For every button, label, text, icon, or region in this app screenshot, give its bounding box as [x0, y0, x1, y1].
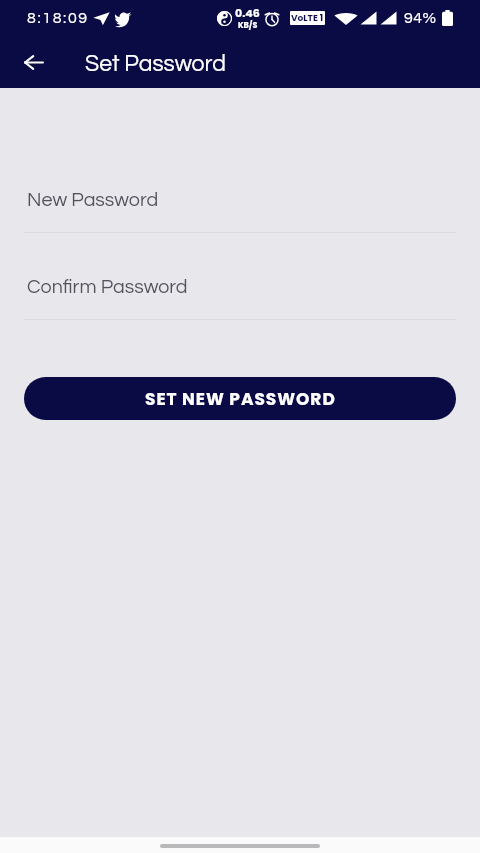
- staticText: 8:18:09: [27, 10, 89, 26]
- button[interactable]: Confirm Password: [24, 277, 456, 320]
- staticText: Set Password: [85, 52, 226, 76]
- staticText: VoLTE 1: [291, 12, 324, 25]
- button[interactable]: New Password: [24, 190, 456, 233]
- staticText: KB/S: [238, 20, 258, 31]
- button[interactable]: Back: [0, 36, 67, 88]
- staticText: New Password: [27, 190, 159, 210]
- staticText: Confirm Password: [27, 277, 188, 297]
- staticText: SET NEW PASSWORD: [145, 387, 336, 411]
- button[interactable]: SET NEW PASSWORD: [24, 377, 456, 420]
- staticText: 0.46: [235, 5, 260, 20]
- staticText: 94%: [404, 10, 437, 26]
